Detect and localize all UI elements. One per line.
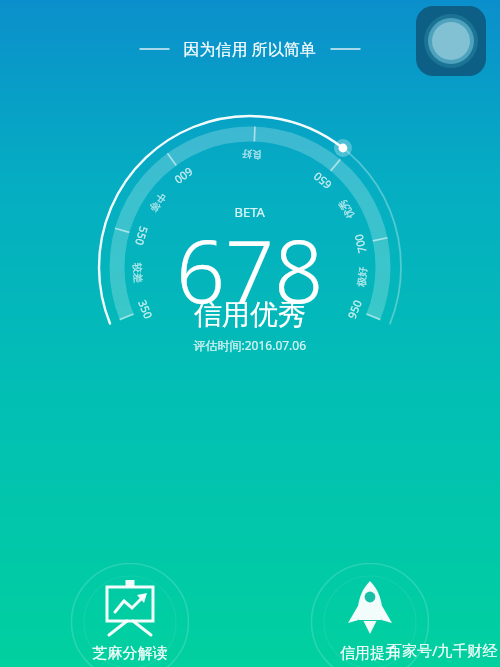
button[interactable]: 芝麻分解读 — [70, 562, 190, 667]
button[interactable]: 信用提升 — [310, 562, 430, 667]
